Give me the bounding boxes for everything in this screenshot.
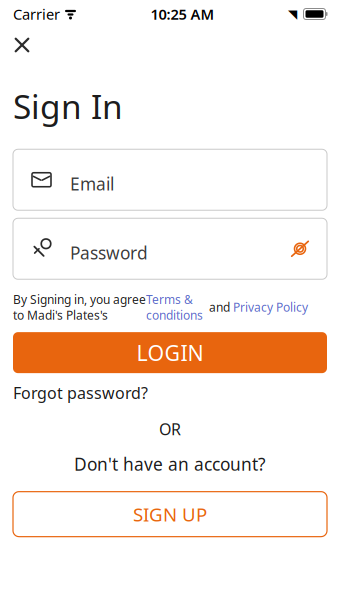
button[interactable]: Privacy Policy [233, 299, 308, 315]
button[interactable]: Forgot password? [13, 382, 148, 403]
staticText: Password [70, 241, 148, 264]
staticText: OR [159, 418, 181, 440]
staticText: Privacy Policy [233, 299, 308, 315]
staticText: SIGN UP [133, 502, 207, 527]
staticText: ◥ [288, 7, 297, 21]
staticText: By Signing in, you agree to Madi's Plate… [13, 291, 146, 323]
button[interactable]: Show password [285, 234, 315, 264]
button[interactable]: LOGIN [13, 332, 327, 373]
staticText: Terms & conditions [146, 291, 203, 323]
staticText: 10:25 AM [150, 4, 214, 24]
staticText: Sign In [13, 84, 123, 128]
button[interactable]: Close [5, 28, 39, 62]
staticText: and [203, 299, 233, 315]
button[interactable]: SIGN UP [13, 492, 327, 537]
staticText: Don't have an account? [74, 453, 266, 476]
staticText: LOGIN [136, 338, 203, 367]
staticText: Carrier [13, 4, 60, 24]
staticText: Forgot password? [13, 382, 148, 403]
staticText: Email [70, 172, 114, 195]
button[interactable]: Terms & conditions [146, 291, 203, 323]
